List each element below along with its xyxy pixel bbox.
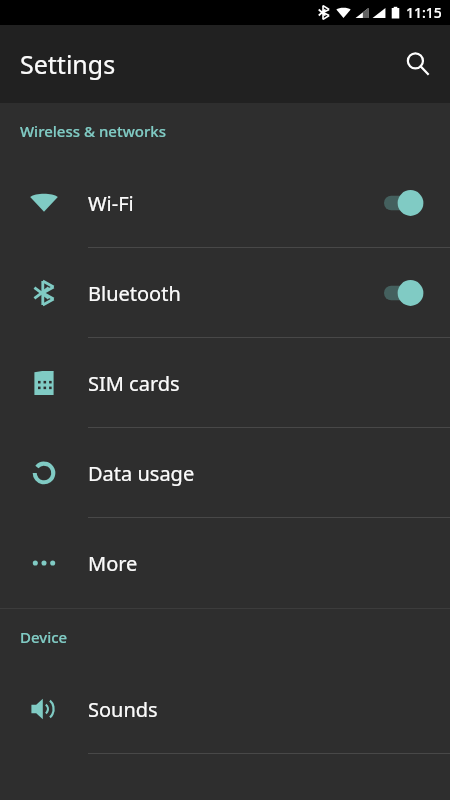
staticText: Settings [20,47,116,81]
button[interactable]: Bluetooth toggle [382,273,434,313]
staticText: Bluetooth [88,280,382,307]
staticText: More [88,550,450,577]
staticText: Device [20,627,68,647]
staticText: Data usage [88,460,450,487]
button[interactable]: Wi-Fi toggle [382,183,434,223]
staticText: 11:15 [406,3,442,22]
button[interactable]: Wi-Fi [0,158,450,248]
staticText: Wi-Fi [88,190,382,217]
button[interactable]: SIM cards [0,338,450,428]
button[interactable]: Sounds [0,664,450,754]
button[interactable]: Data usage [0,428,450,518]
button[interactable]: Bluetooth [0,248,450,338]
staticText: Wireless & networks [20,121,166,141]
button[interactable]: More [0,518,450,608]
staticText: SIM cards [88,370,450,397]
staticText: Sounds [88,696,450,723]
button[interactable]: Search [394,40,442,88]
